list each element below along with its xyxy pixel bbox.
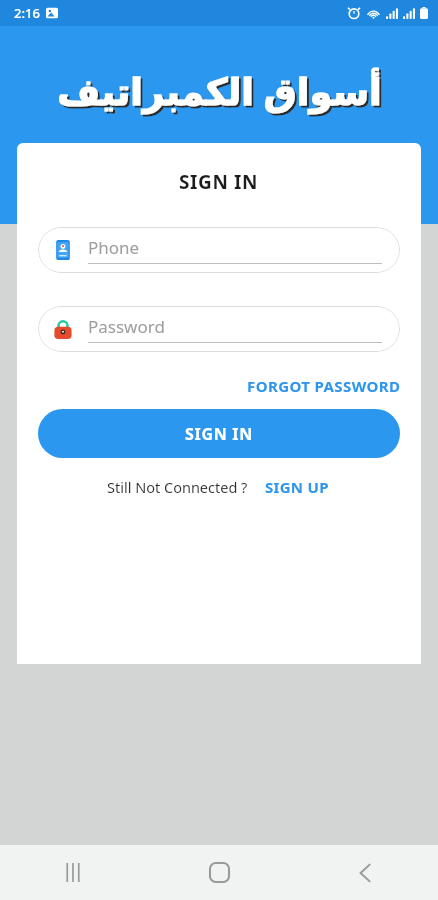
staticText: SIGN IN <box>179 169 259 195</box>
button[interactable]: SIGN IN <box>38 409 400 458</box>
staticText: أسواق الكمبراتيف <box>59 67 384 117</box>
button[interactable]: FORGOT PASSWORD <box>243 372 405 400</box>
staticText: Password <box>88 315 165 338</box>
button[interactable]: Back <box>292 845 438 900</box>
staticText: أسواق الكمبراتيف <box>57 65 382 115</box>
button[interactable]: Phone <box>38 227 400 273</box>
button[interactable]: Home <box>146 845 292 900</box>
staticText: Phone <box>88 236 140 259</box>
staticText: 2:16 <box>14 4 40 22</box>
staticText: FORGOT PASSWORD <box>247 376 401 396</box>
button[interactable]: SIGN UP <box>262 474 332 500</box>
staticText: SIGN IN <box>185 423 253 445</box>
staticText: Still Not Connected ? <box>107 477 248 497</box>
button[interactable]: Recent apps <box>0 845 146 900</box>
button[interactable]: Password <box>38 306 400 352</box>
staticText: SIGN UP <box>265 477 329 497</box>
